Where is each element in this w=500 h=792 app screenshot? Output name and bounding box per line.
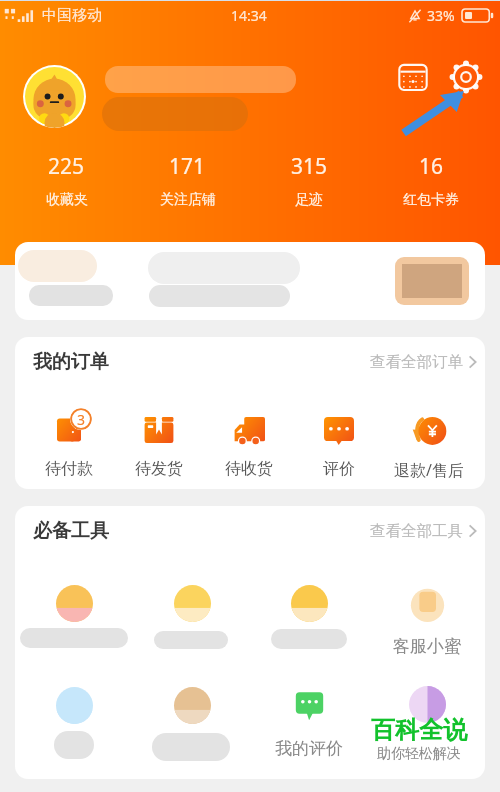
- button[interactable]: [15, 687, 133, 779]
- staticText: 16: [419, 152, 444, 181]
- staticText: 315: [291, 152, 328, 181]
- button[interactable]: 查看全部订单: [370, 352, 477, 372]
- staticText: 待发货: [135, 459, 183, 479]
- staticText: 查看全部订单: [370, 352, 463, 372]
- staticText: 红包卡券: [403, 191, 459, 209]
- button[interactable]: 16: [370, 144, 492, 216]
- staticText: 助你轻松解决: [377, 745, 461, 763]
- button[interactable]: Avatar: [23, 65, 86, 128]
- button[interactable]: 查看全部工具: [370, 521, 477, 541]
- button[interactable]: 3: [24, 417, 114, 479]
- staticText: 待付款: [45, 459, 93, 479]
- staticText: 关注店铺: [160, 191, 216, 209]
- staticText: 待收货: [225, 459, 273, 479]
- staticText: 我的订单: [33, 350, 109, 374]
- button[interactable]: [250, 687, 368, 779]
- staticText: 退款/售后: [394, 459, 464, 481]
- staticText: 客服小蜜: [393, 636, 461, 657]
- button[interactable]: 退款/售后: [384, 417, 474, 481]
- button[interactable]: 待发货: [114, 417, 204, 479]
- button[interactable]: 评价: [294, 417, 384, 479]
- staticText: 评价: [323, 459, 355, 479]
- staticText: 必备工具: [33, 519, 109, 543]
- button[interactable]: [133, 585, 251, 685]
- staticText: 中国移动: [42, 6, 102, 25]
- staticText: 171: [169, 152, 206, 181]
- button[interactable]: User name: [105, 66, 296, 93]
- button[interactable]: Calendar: [394, 58, 432, 96]
- staticText: 足迹: [295, 191, 323, 209]
- button[interactable]: Member level: [102, 97, 248, 131]
- staticText: 33%: [427, 6, 455, 25]
- button[interactable]: [368, 585, 485, 685]
- staticText: 收藏夹: [46, 191, 88, 209]
- button[interactable]: 待收货: [204, 417, 294, 479]
- staticText: 225: [48, 152, 85, 181]
- button[interactable]: 225: [6, 144, 127, 216]
- button[interactable]: [250, 585, 368, 685]
- staticText: 查看全部工具: [370, 521, 463, 541]
- staticText: 3: [77, 410, 86, 429]
- staticText: 14:34: [231, 6, 267, 25]
- button[interactable]: Settings: [446, 57, 486, 97]
- button[interactable]: [15, 585, 133, 685]
- button[interactable]: Member banner: [15, 242, 485, 320]
- button[interactable]: 171: [127, 144, 248, 216]
- button[interactable]: [133, 687, 251, 779]
- button[interactable]: 315: [248, 144, 370, 216]
- staticText: 我的评价: [275, 738, 343, 759]
- staticText: 百科全说: [371, 715, 467, 745]
